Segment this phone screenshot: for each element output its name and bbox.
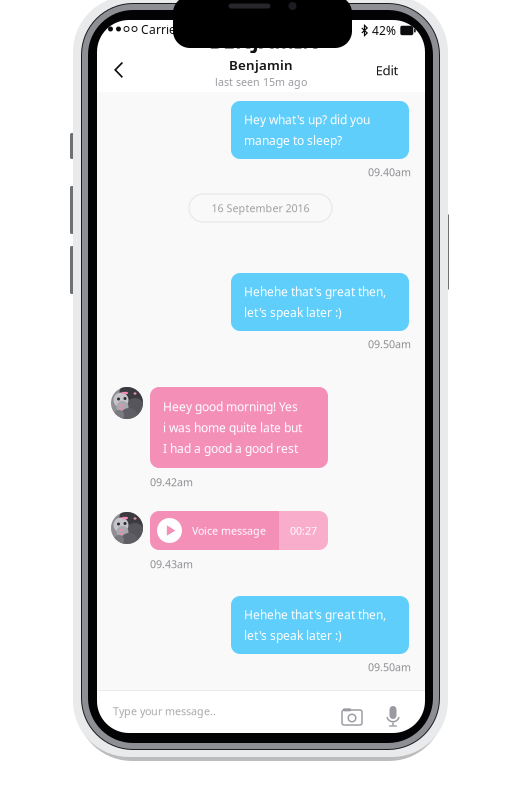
staticText: BENJAMIN bbox=[209, 26, 319, 54]
staticText: 42% bbox=[372, 22, 396, 38]
staticText: Carrier bbox=[141, 21, 181, 37]
staticText: 09.43am bbox=[150, 557, 193, 571]
staticText: Hey what's up? did you bbox=[244, 112, 370, 127]
staticText: 09.40am bbox=[368, 165, 411, 179]
button[interactable]: Back bbox=[100, 50, 138, 90]
staticText: let's speak later :) bbox=[244, 627, 342, 643]
button[interactable]: Type your message.. bbox=[113, 690, 323, 732]
staticText: Type your message.. bbox=[113, 704, 216, 718]
staticText: I had a good a good rest bbox=[163, 440, 298, 456]
button[interactable]: Record voice message bbox=[378, 695, 408, 737]
button[interactable]: Camera bbox=[335, 695, 369, 737]
staticText: 09.50am bbox=[368, 660, 411, 674]
staticText: 09.50am bbox=[368, 337, 411, 351]
staticText: manage to sleep? bbox=[244, 132, 342, 148]
staticText: 00:27 bbox=[290, 523, 317, 538]
staticText: last seen 15m ago bbox=[215, 75, 307, 89]
staticText: let's speak later :) bbox=[244, 304, 342, 320]
staticText: Hehehe that's great then, bbox=[244, 284, 386, 299]
button[interactable]: Edit bbox=[363, 50, 411, 90]
staticText: i was home quite late but bbox=[163, 419, 302, 435]
staticText: Hehehe that's great then, bbox=[244, 607, 386, 622]
staticText: 09.42am bbox=[150, 475, 193, 489]
staticText: Heey good morning! Yes bbox=[163, 399, 298, 414]
staticText: Edit bbox=[375, 61, 398, 79]
staticText: 16 September 2016 bbox=[211, 201, 309, 215]
staticText: Voice message bbox=[192, 523, 266, 538]
staticText: Benjamin bbox=[229, 56, 293, 74]
